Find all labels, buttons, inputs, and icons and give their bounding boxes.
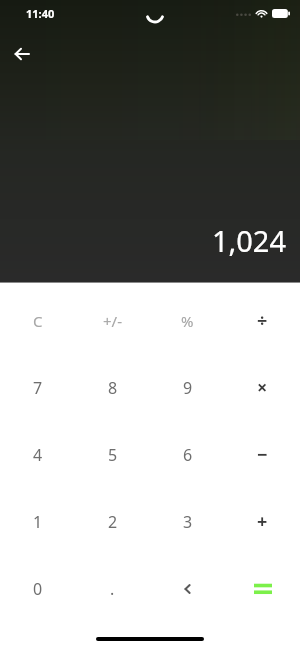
button[interactable]: 4 bbox=[0, 421, 75, 488]
staticText: + bbox=[257, 509, 268, 534]
button[interactable]: 0 bbox=[0, 555, 75, 622]
button[interactable]: 1 bbox=[0, 488, 75, 555]
staticText: +/- bbox=[103, 311, 122, 331]
staticText: % bbox=[181, 311, 194, 331]
button[interactable]: . bbox=[75, 555, 150, 622]
staticText: 7 bbox=[33, 377, 43, 399]
button[interactable]: 6 bbox=[150, 421, 225, 488]
button[interactable]: 2 bbox=[75, 488, 150, 555]
button[interactable]: % bbox=[150, 287, 225, 354]
button[interactable]: +/- bbox=[75, 287, 150, 354]
button[interactable]: Back bbox=[6, 38, 38, 70]
staticText: 9 bbox=[183, 377, 193, 399]
staticText: 1,024 bbox=[211, 221, 286, 260]
staticText: 0 bbox=[33, 578, 43, 600]
staticText: 5 bbox=[108, 444, 118, 466]
button[interactable]: 7 bbox=[0, 354, 75, 421]
staticText: ÷ bbox=[257, 308, 268, 333]
staticText: 6 bbox=[183, 444, 193, 466]
button[interactable]: − bbox=[225, 421, 300, 488]
staticText: 1 bbox=[33, 511, 43, 533]
button[interactable]: + bbox=[225, 488, 300, 555]
button[interactable]: Equals bbox=[225, 555, 300, 622]
button[interactable]: 5 bbox=[75, 421, 150, 488]
staticText: 2 bbox=[108, 511, 118, 533]
staticText: 3 bbox=[183, 511, 193, 533]
staticText: C bbox=[33, 311, 43, 331]
staticText: − bbox=[257, 442, 268, 467]
button[interactable]: Backspace bbox=[150, 555, 225, 622]
staticText: × bbox=[257, 375, 268, 400]
staticText: 4 bbox=[33, 444, 43, 466]
button[interactable]: 8 bbox=[75, 354, 150, 421]
button[interactable]: 9 bbox=[150, 354, 225, 421]
button[interactable]: × bbox=[225, 354, 300, 421]
staticText: 11:40 bbox=[26, 6, 55, 21]
staticText: . bbox=[110, 578, 115, 600]
button[interactable]: 3 bbox=[150, 488, 225, 555]
staticText: 8 bbox=[108, 377, 118, 399]
button[interactable]: C bbox=[0, 287, 75, 354]
button[interactable]: ÷ bbox=[225, 287, 300, 354]
